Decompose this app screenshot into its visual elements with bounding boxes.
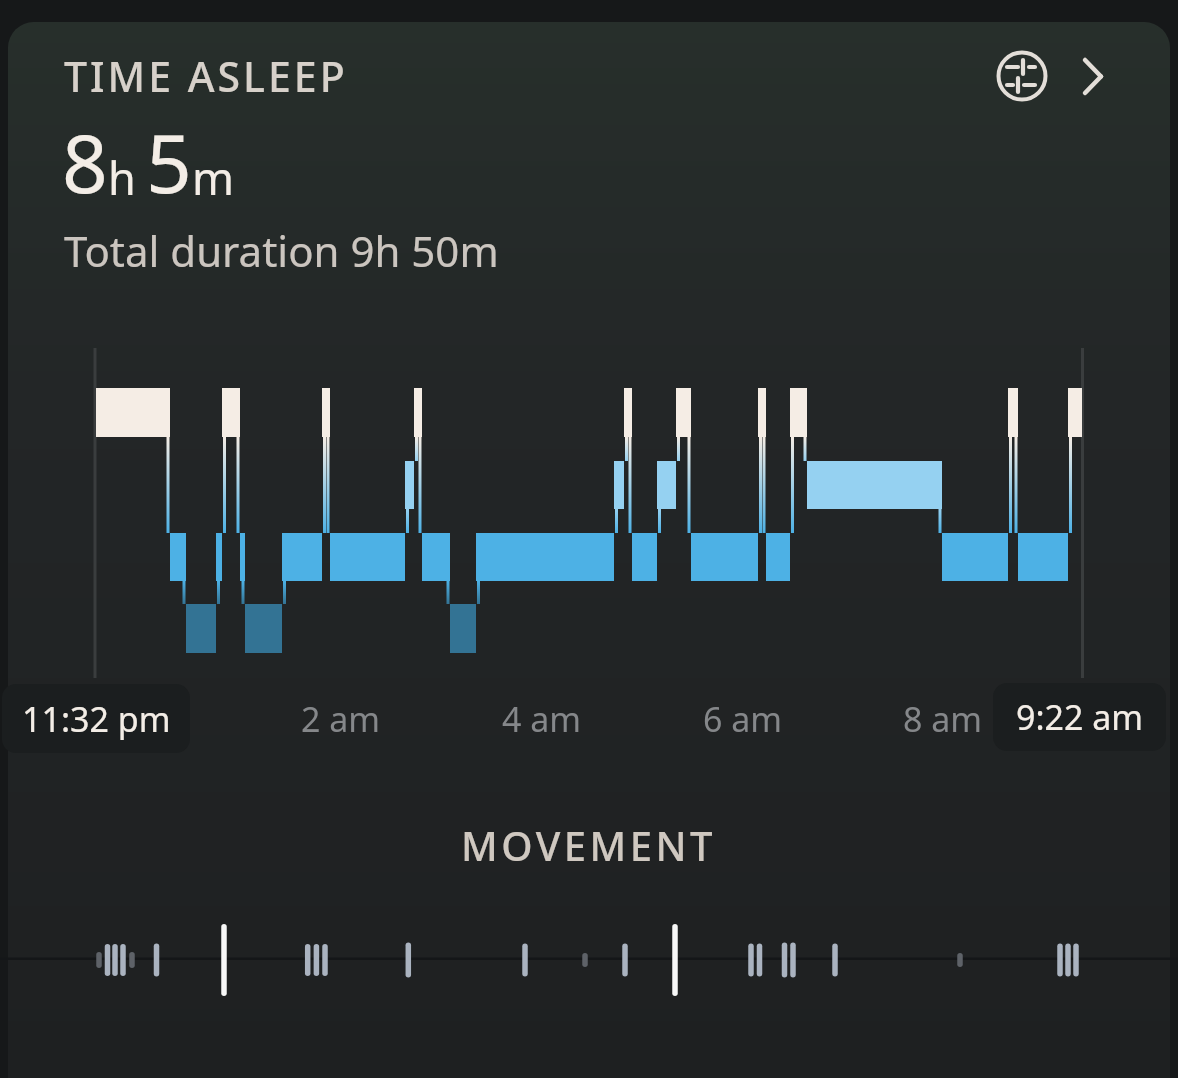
staticText: m xyxy=(192,147,235,208)
staticText: 9:22 am xyxy=(1016,694,1144,740)
staticText: 6 am xyxy=(703,696,783,742)
button[interactable]: 9:22 am xyxy=(993,683,1166,751)
staticText: MOVEMENT xyxy=(461,818,717,868)
staticText: 5 xyxy=(146,107,192,216)
button[interactable] xyxy=(8,22,1170,1078)
button[interactable]: 11:32 pm xyxy=(2,684,190,753)
staticText: 4 am xyxy=(502,696,582,742)
staticText: 11:32 pm xyxy=(22,696,171,742)
staticText: 8 am xyxy=(903,696,983,742)
staticText: Total duration 9h 50m xyxy=(64,222,499,279)
staticText: 8 xyxy=(62,107,108,216)
staticText: TIME ASLEEP xyxy=(64,48,348,104)
staticText: 2 am xyxy=(301,696,381,742)
button[interactable] xyxy=(994,48,1050,104)
button[interactable] xyxy=(1072,48,1128,104)
staticText: h xyxy=(108,147,136,208)
